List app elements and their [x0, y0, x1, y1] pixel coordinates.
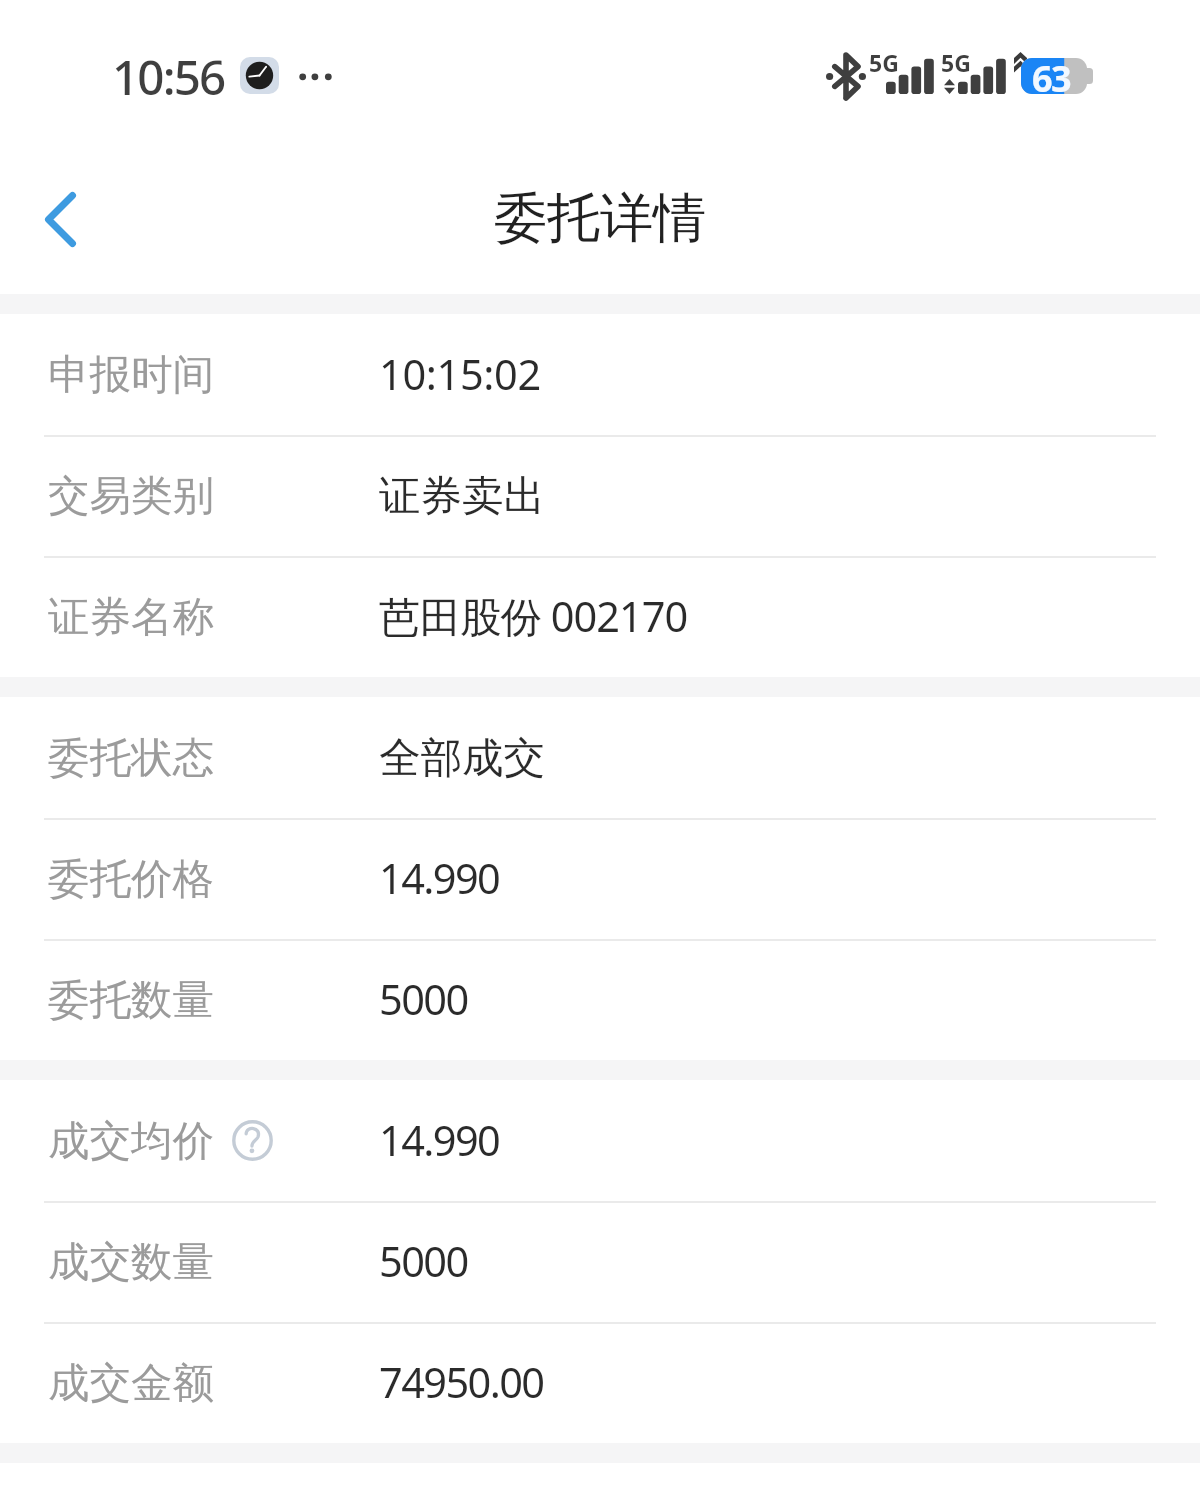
button[interactable]: 申报时间 [0, 314, 1200, 435]
staticText: 63 [1032, 54, 1071, 92]
staticText: 14.990 [379, 850, 500, 907]
button[interactable]: 委托状态 [0, 697, 1200, 818]
button[interactable]: 交易类别 [0, 435, 1200, 556]
staticText: 申报时间 [48, 349, 214, 401]
button[interactable]: 委托价格 [0, 818, 1200, 939]
staticText: 成交数量 [48, 1236, 214, 1288]
button[interactable]: Back [14, 173, 106, 265]
staticText: 证券名称 [48, 591, 214, 643]
staticText: 10:56 [112, 44, 225, 109]
staticText: 委托状态 [48, 732, 214, 784]
button[interactable]: 成交金额 [0, 1322, 1200, 1443]
staticText: 芭田股份 002170 [379, 588, 688, 645]
staticText: 5G [869, 47, 899, 78]
staticText: 5G [941, 47, 971, 78]
staticText: 5000 [379, 971, 468, 1028]
staticText: 5000 [379, 1233, 468, 1290]
staticText: 10:15:02 [379, 346, 541, 403]
staticText: 成交均价 [48, 1115, 214, 1167]
button[interactable]: 成交数量 [0, 1201, 1200, 1322]
staticText: 74950.00 [379, 1354, 544, 1411]
staticText: 交易类别 [48, 470, 214, 522]
staticText: 全部成交 [379, 732, 545, 784]
button[interactable]: 成交均价 [0, 1080, 1200, 1201]
staticText: 委托数量 [48, 974, 214, 1026]
button[interactable]: Help: average fill price [232, 1120, 273, 1161]
staticText: 委托价格 [48, 853, 214, 905]
staticText: 委托详情 [494, 185, 706, 252]
staticText: 证券卖出 [379, 470, 545, 522]
staticText: 成交金额 [48, 1357, 214, 1409]
button[interactable]: 委托数量 [0, 939, 1200, 1060]
staticText: 14.990 [379, 1112, 500, 1169]
button[interactable]: 证券名称 [0, 556, 1200, 677]
